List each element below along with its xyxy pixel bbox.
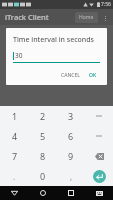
button[interactable]: Switch keyboard	[85, 186, 113, 200]
button[interactable]: 5	[29, 126, 57, 146]
button[interactable]: Enter	[85, 166, 113, 186]
button[interactable]: Recent apps	[57, 186, 85, 200]
staticText: ,	[70, 171, 73, 182]
staticText: 1	[12, 110, 18, 122]
button[interactable]: Backspace	[85, 146, 113, 166]
button[interactable]: Dash	[85, 126, 113, 146]
button[interactable]: ,	[57, 166, 85, 186]
staticText: 5	[40, 130, 46, 142]
staticText: 7:56	[101, 1, 111, 8]
button[interactable]: 7	[0, 146, 29, 166]
staticText: Home	[79, 14, 94, 21]
button[interactable]: 3	[57, 106, 85, 126]
button[interactable]: More options	[100, 13, 110, 23]
staticText: 2	[40, 110, 46, 122]
button[interactable]: 4	[0, 126, 29, 146]
staticText: 8	[40, 150, 46, 162]
button[interactable]: 8	[29, 146, 57, 166]
button[interactable]: 6	[57, 126, 85, 146]
staticText: Time interval in seconds	[13, 35, 94, 45]
button[interactable]: OK	[87, 70, 99, 81]
staticText: 4	[12, 130, 18, 142]
button[interactable]: 1	[0, 106, 29, 126]
staticText: 3	[68, 110, 74, 122]
button[interactable]: Dash	[85, 106, 113, 126]
staticText: 7	[12, 150, 18, 162]
staticText: 0	[40, 170, 46, 182]
staticText: OK	[89, 72, 97, 79]
button[interactable]: Home	[29, 186, 57, 200]
staticText: iTrack Client	[5, 12, 49, 22]
staticText: .	[13, 171, 16, 182]
button[interactable]: 9	[57, 146, 85, 166]
button[interactable]: 0	[29, 166, 57, 186]
staticText: 6	[68, 130, 74, 142]
button[interactable]: Home	[75, 12, 98, 23]
staticText: 9	[68, 150, 74, 162]
button[interactable]: Hide keyboard	[0, 186, 29, 200]
button[interactable]: CANCEL	[59, 70, 82, 81]
staticText: 30	[15, 51, 23, 60]
staticText: CANCEL	[61, 72, 80, 79]
button[interactable]: 2	[29, 106, 57, 126]
